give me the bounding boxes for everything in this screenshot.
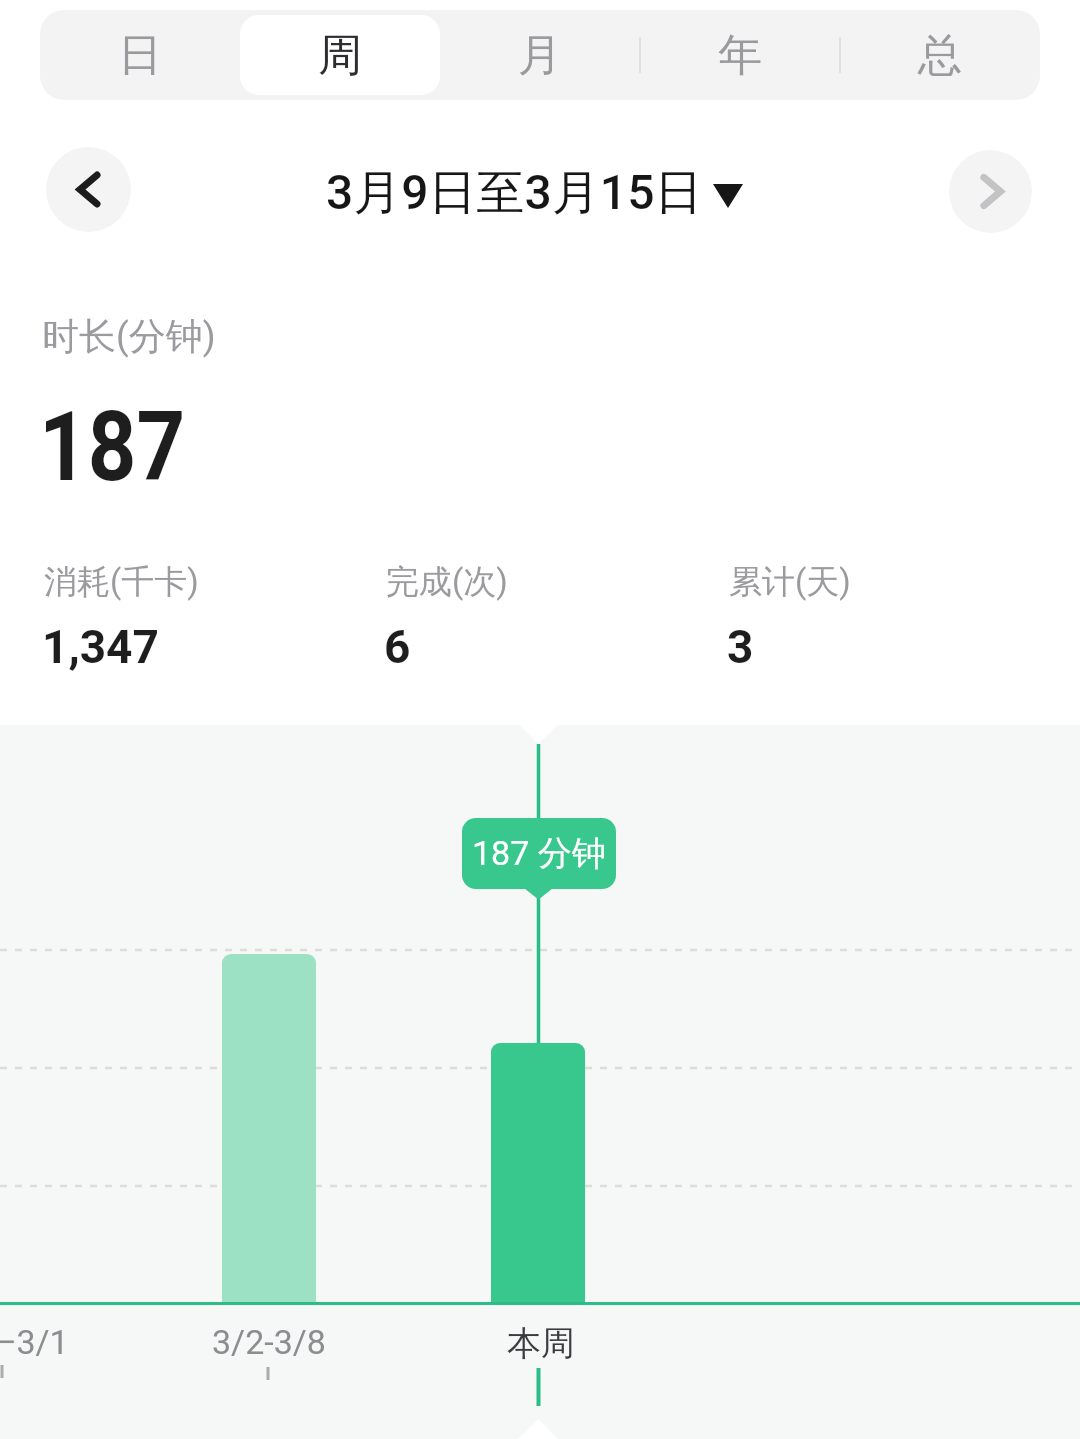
staticText: 消耗(千卡) [44, 561, 199, 603]
staticText: 3 [727, 620, 754, 674]
staticText: 3/2-3/8 [212, 1322, 326, 1362]
staticText: 日 [118, 28, 162, 83]
button[interactable]: 月 [440, 15, 640, 95]
staticText: 完成(次) [386, 561, 508, 603]
button[interactable]: 周 [240, 15, 440, 95]
button[interactable]: 日 [40, 15, 240, 95]
staticText: 月 [518, 28, 562, 83]
staticText: 累计(天) [729, 561, 851, 603]
staticText: 187 [39, 390, 185, 504]
staticText: 本周 [507, 1322, 575, 1365]
staticText: 时长(分钟) [42, 313, 216, 360]
button[interactable]: 3月9日至3月15日 [0, 158, 1074, 228]
button[interactable]: 总 [840, 15, 1040, 95]
staticText: 6 [384, 620, 411, 674]
staticText: 总 [918, 28, 962, 83]
button[interactable] [949, 150, 1032, 233]
staticText: 1,347 [42, 620, 159, 674]
staticText: 187 分钟 [472, 832, 606, 875]
staticText: 年 [718, 28, 762, 83]
staticText: −3/1 [0, 1322, 69, 1362]
staticText: 3月9日至3月15日 [326, 163, 703, 223]
button[interactable] [46, 147, 131, 232]
staticText: 周 [318, 28, 362, 83]
button[interactable]: 年 [640, 15, 840, 95]
